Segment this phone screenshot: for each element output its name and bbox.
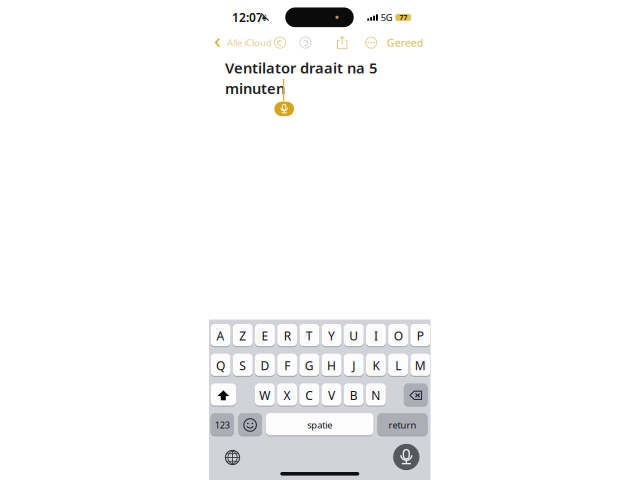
- staticText: spatie: [307, 419, 332, 431]
- button[interactable]: T: [299, 324, 319, 346]
- button[interactable]: 123: [211, 413, 234, 435]
- button[interactable]: E: [255, 324, 275, 346]
- button[interactable]: G: [299, 354, 319, 376]
- button[interactable]: I: [366, 324, 386, 346]
- staticText: K: [372, 358, 379, 373]
- staticText: Q: [216, 358, 225, 373]
- button[interactable]: P: [410, 324, 430, 346]
- staticText: E: [261, 328, 268, 344]
- button[interactable]: Redo: [300, 37, 311, 48]
- button[interactable]: Dictate: [274, 102, 294, 116]
- staticText: G: [305, 358, 314, 373]
- button[interactable]: D: [255, 354, 275, 376]
- button[interactable]: W: [255, 383, 275, 406]
- button[interactable]: H: [322, 354, 341, 376]
- staticText: T: [306, 328, 313, 344]
- staticText: Alle iCloud: [227, 36, 272, 49]
- staticText: S: [239, 358, 246, 373]
- staticText: I: [374, 328, 378, 344]
- button[interactable]: spatie: [266, 413, 373, 435]
- staticText: V: [328, 387, 335, 403]
- staticText: D: [260, 358, 269, 373]
- button[interactable]: J: [344, 354, 364, 376]
- staticText: R: [284, 328, 291, 344]
- button[interactable]: Share: [337, 36, 347, 49]
- button[interactable]: M: [410, 354, 430, 376]
- button[interactable]: Undo: [274, 37, 286, 48]
- staticText: 123: [215, 419, 230, 431]
- button[interactable]: X: [277, 383, 297, 406]
- button[interactable]: Y: [322, 324, 341, 346]
- button[interactable]: S: [233, 354, 253, 376]
- button[interactable]: Dictation: [393, 444, 419, 470]
- staticText: A: [216, 328, 224, 344]
- button[interactable]: Emoji: [238, 413, 262, 435]
- button[interactable]: F: [277, 354, 297, 376]
- button[interactable]: return: [377, 413, 427, 435]
- button[interactable]: Next keyboard: [225, 450, 240, 465]
- staticText: P: [417, 328, 424, 344]
- button[interactable]: B: [344, 383, 364, 406]
- button[interactable]: Alle iCloud: [215, 34, 285, 52]
- staticText: minuten: [225, 78, 285, 98]
- button[interactable]: More: [366, 37, 377, 48]
- staticText: U: [349, 328, 358, 344]
- staticText: Z: [239, 328, 246, 344]
- button[interactable]: Shift: [211, 383, 236, 406]
- button[interactable]: U: [344, 324, 364, 346]
- button[interactable]: Backspace: [404, 383, 428, 406]
- button[interactable]: C: [299, 383, 319, 406]
- button[interactable]: O: [388, 324, 408, 346]
- staticText: L: [395, 358, 401, 373]
- staticText: C: [305, 387, 313, 403]
- staticText: M: [415, 358, 426, 373]
- staticText: J: [352, 358, 355, 373]
- button[interactable]: L: [388, 354, 408, 376]
- staticText: O: [394, 328, 403, 344]
- button[interactable]: N: [366, 383, 386, 406]
- staticText: B: [350, 387, 358, 403]
- button[interactable]: K: [366, 354, 386, 376]
- staticText: F: [284, 358, 290, 373]
- staticText: N: [371, 387, 380, 403]
- button[interactable]: Z: [233, 324, 253, 346]
- button[interactable]: Q: [211, 354, 230, 376]
- staticText: W: [259, 387, 270, 403]
- staticText: X: [284, 387, 291, 403]
- staticText: H: [327, 358, 336, 373]
- button[interactable]: A: [211, 324, 230, 346]
- button[interactable]: V: [321, 383, 341, 406]
- button[interactable]: Gereed: [387, 35, 424, 50]
- staticText: 5G: [381, 11, 393, 24]
- staticText: 77: [399, 13, 407, 22]
- staticText: Ventilator draait na 5: [225, 58, 377, 78]
- staticText: Gereed: [387, 35, 424, 50]
- staticText: 12:07: [232, 9, 263, 25]
- staticText: return: [388, 419, 416, 431]
- button[interactable]: R: [277, 324, 297, 346]
- staticText: Y: [328, 328, 335, 344]
